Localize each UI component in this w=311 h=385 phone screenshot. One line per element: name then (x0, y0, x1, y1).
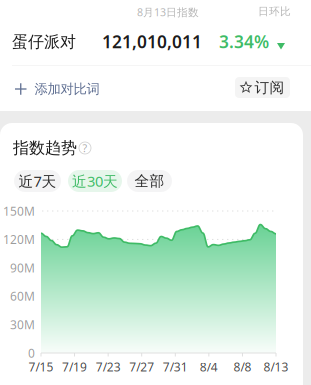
staticText: 7/15 (28, 359, 53, 375)
staticText: 8/13 (263, 359, 288, 375)
staticText: 121,010,011 (102, 30, 202, 53)
button[interactable]: 添加对比词 (0, 73, 114, 105)
button[interactable]: 近7天 (14, 170, 61, 192)
button[interactable]: 近30天 (68, 170, 122, 192)
staticText: 指数趋势 (13, 138, 77, 158)
button[interactable]: 全部 (127, 170, 172, 192)
staticText: 30M (10, 317, 35, 332)
staticText: ? (82, 141, 87, 155)
staticText: 添加对比词 (34, 81, 99, 97)
button[interactable]: 订阅 (235, 77, 290, 98)
staticText: 8/4 (200, 359, 218, 375)
staticText: 近30天 (72, 171, 118, 191)
staticText: 7/27 (129, 359, 154, 375)
staticText: 120M (3, 231, 35, 247)
staticText: 8/8 (233, 359, 251, 375)
staticText: 60M (10, 288, 35, 304)
staticText: 0 (28, 345, 35, 361)
staticText: 日环比 (258, 5, 291, 18)
staticText: 8月13日指数 (137, 5, 199, 19)
staticText: 蛋仔派对 (12, 32, 76, 52)
staticText: 7/19 (62, 359, 87, 375)
staticText: 全部 (134, 172, 164, 190)
staticText: 订阅 (254, 78, 284, 96)
staticText: 7/31 (163, 359, 188, 375)
staticText: 150M (3, 203, 35, 219)
staticText: 90M (10, 260, 35, 276)
staticText: 3.34% (219, 30, 269, 53)
staticText: 近7天 (18, 171, 56, 191)
staticText: 7/23 (96, 359, 121, 375)
